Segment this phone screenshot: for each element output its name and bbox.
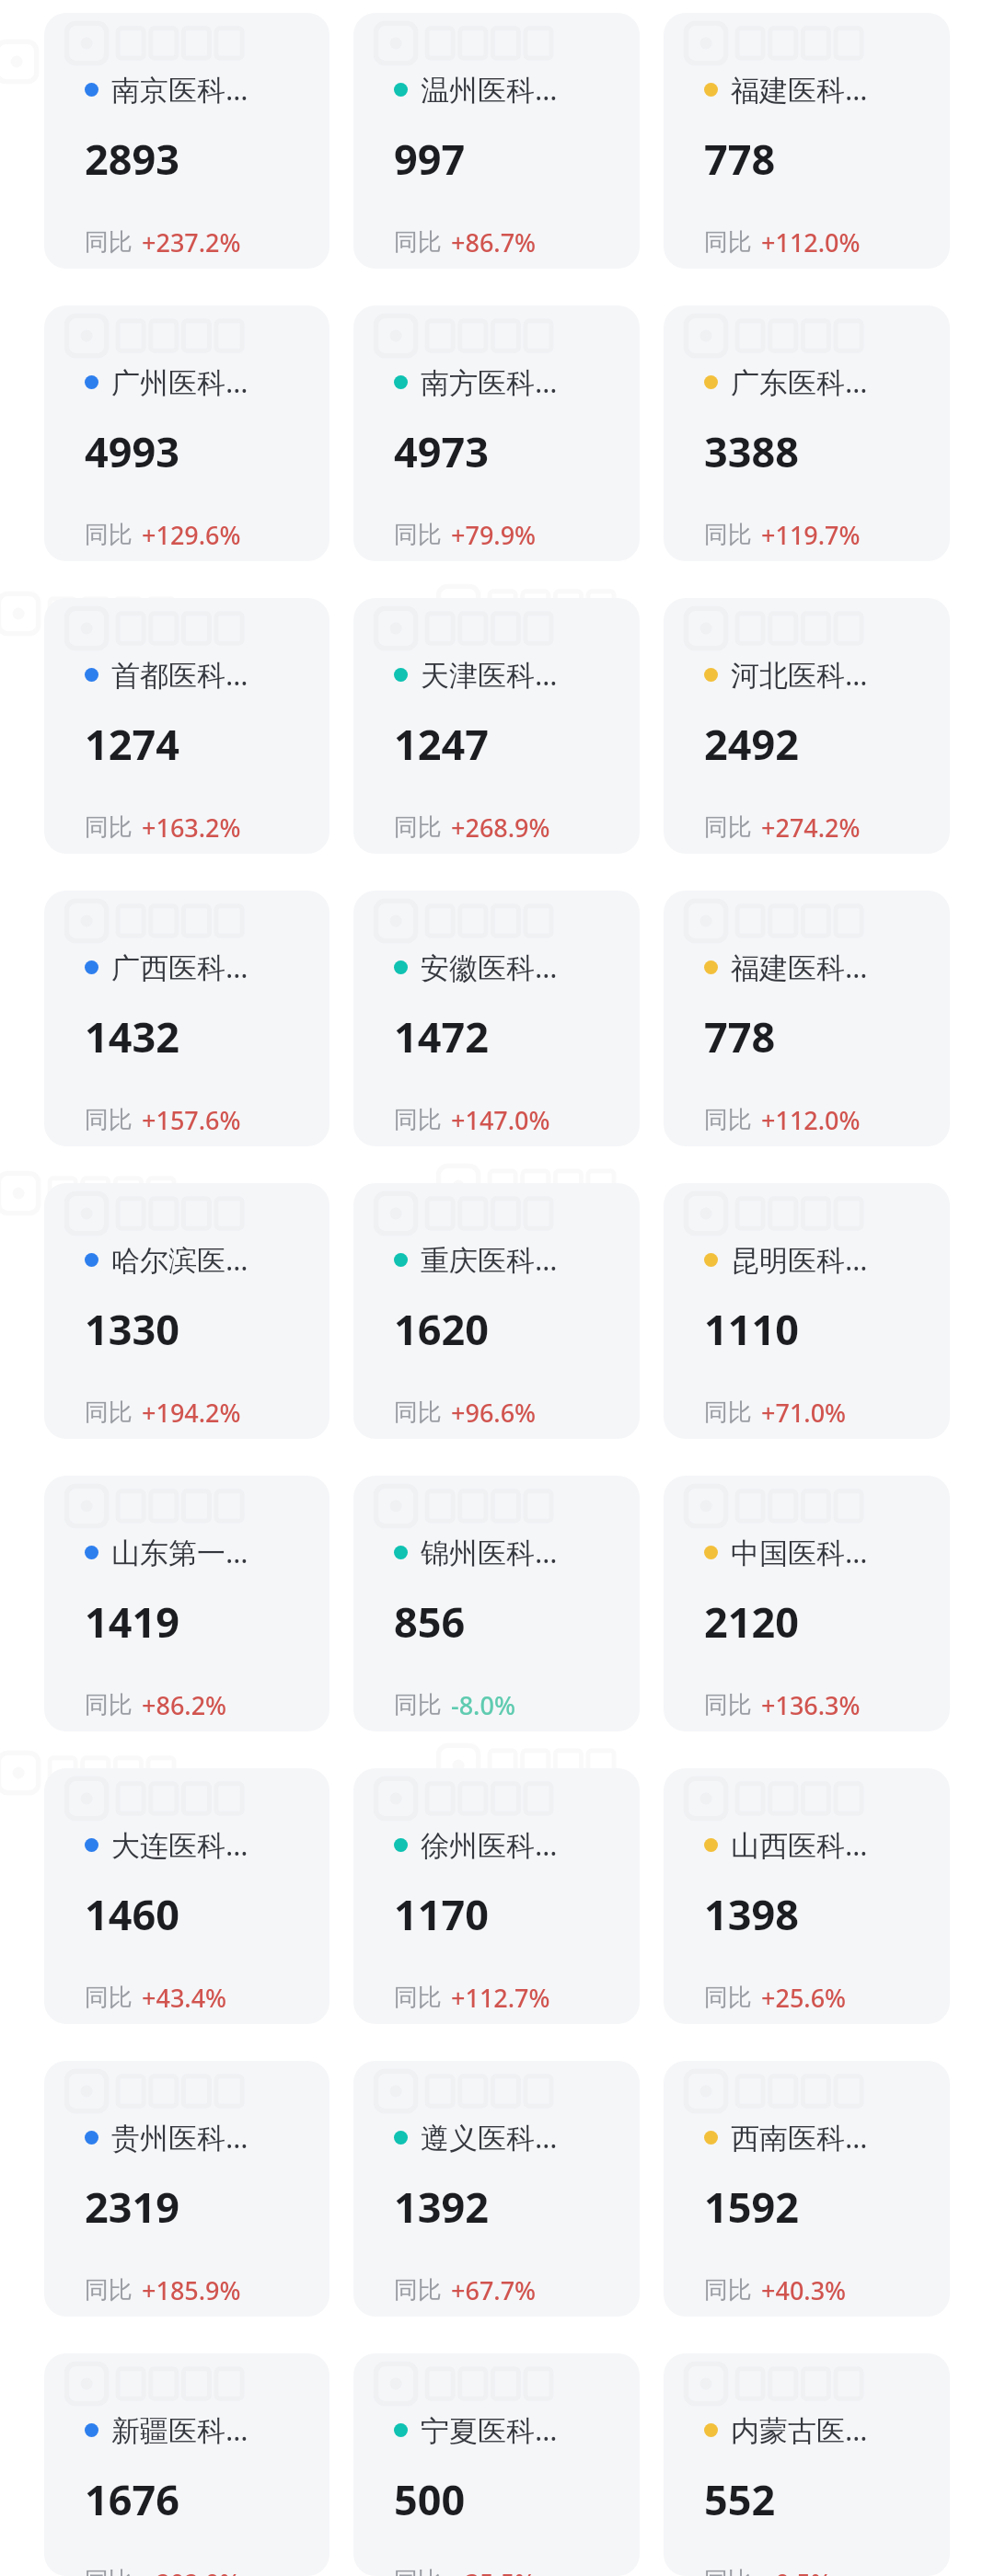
staticText: 同比: [394, 1397, 442, 1428]
staticText: +43.4%: [142, 1981, 227, 2015]
button[interactable]: 南京医科…: [44, 13, 329, 269]
staticText: 1392: [394, 2179, 489, 2235]
staticText: 500: [394, 2471, 466, 2527]
staticText: 同比: [394, 1105, 442, 1135]
staticText: 同比: [85, 2275, 133, 2306]
staticText: 1170: [394, 1886, 489, 1942]
button[interactable]: 山东第一…: [44, 1476, 329, 1731]
staticText: 遵义医科…: [421, 2118, 558, 2156]
button[interactable]: 天津医科…: [353, 598, 640, 854]
button[interactable]: 大连医科…: [44, 1768, 329, 2024]
staticText: +112.0%: [761, 225, 861, 259]
staticText: 同比: [704, 1397, 752, 1428]
staticText: +202.0%: [142, 2566, 241, 2576]
button[interactable]: 西南医科…: [664, 2061, 950, 2317]
staticText: 同比: [85, 2566, 133, 2576]
button[interactable]: 锦州医科…: [353, 1476, 640, 1731]
button[interactable]: 广东医科…: [664, 305, 950, 561]
button[interactable]: 贵州医科…: [44, 2061, 329, 2317]
button[interactable]: 宁夏医科…: [353, 2353, 640, 2576]
staticText: 1419: [85, 1593, 179, 1650]
staticText: 同比: [85, 1105, 133, 1135]
staticText: +119.7%: [761, 518, 861, 552]
button[interactable]: 安徽医科…: [353, 891, 640, 1146]
button[interactable]: 南方医科…: [353, 305, 640, 561]
staticText: +268.9%: [451, 811, 550, 845]
button[interactable]: 首都医科…: [44, 598, 329, 854]
staticText: 福建医科…: [731, 948, 868, 986]
staticText: 1247: [394, 716, 489, 772]
staticText: 2120: [704, 1593, 799, 1650]
button[interactable]: 哈尔滨医…: [44, 1183, 329, 1439]
staticText: 河北医科…: [731, 655, 868, 694]
staticText: +237.2%: [142, 225, 241, 259]
staticText: +157.6%: [142, 1103, 241, 1137]
staticText: 安徽医科…: [421, 948, 558, 986]
button[interactable]: 广西医科…: [44, 891, 329, 1146]
staticText: 同比: [394, 520, 442, 550]
button[interactable]: 新疆医科…: [44, 2353, 329, 2576]
staticText: 1460: [85, 1886, 179, 1942]
staticText: 1110: [704, 1301, 799, 1357]
staticText: 西南医科…: [731, 2118, 868, 2156]
staticText: 同比: [85, 1397, 133, 1428]
button[interactable]: 山西医科…: [664, 1768, 950, 2024]
staticText: 同比: [85, 1690, 133, 1720]
staticText: 同比: [394, 812, 442, 843]
staticText: 哈尔滨医…: [111, 1240, 248, 1279]
staticText: +67.7%: [451, 2273, 537, 2307]
button[interactable]: 中国医科…: [664, 1476, 950, 1731]
staticText: 首都医科…: [111, 655, 248, 694]
staticText: 温州医科…: [421, 70, 558, 109]
staticText: 南京医科…: [111, 70, 248, 109]
staticText: 南方医科…: [421, 362, 558, 401]
staticText: 同比: [704, 227, 752, 258]
staticText: 广西医科…: [111, 948, 248, 986]
staticText: 同比: [394, 1690, 442, 1720]
staticText: +25.6%: [761, 1981, 847, 2015]
staticText: 重庆医科…: [421, 1240, 558, 1279]
button[interactable]: 遵义医科…: [353, 2061, 640, 2317]
staticText: 徐州医科…: [421, 1825, 558, 1864]
staticText: 广东医科…: [731, 362, 868, 401]
staticText: +40.3%: [761, 2273, 847, 2307]
staticText: 552: [704, 2471, 776, 2527]
button[interactable]: 福建医科…: [664, 891, 950, 1146]
button[interactable]: 昆明医科…: [664, 1183, 950, 1439]
staticText: 山东第一…: [111, 1533, 248, 1571]
button[interactable]: 广州医科…: [44, 305, 329, 561]
staticText: 同比: [704, 1983, 752, 2013]
staticText: +129.6%: [142, 518, 241, 552]
staticText: 中国医科…: [731, 1533, 868, 1571]
staticText: 同比: [394, 2275, 442, 2306]
staticText: 同比: [704, 2275, 752, 2306]
staticText: +86.2%: [142, 1688, 227, 1722]
button[interactable]: 温州医科…: [353, 13, 640, 269]
staticText: 3388: [704, 423, 799, 479]
staticText: +71.0%: [761, 1396, 847, 1430]
staticText: 778: [704, 131, 776, 187]
staticText: 福建医科…: [731, 70, 868, 109]
staticText: 贵州医科…: [111, 2118, 248, 2156]
staticText: 昆明医科…: [731, 1240, 868, 1279]
button[interactable]: 河北医科…: [664, 598, 950, 854]
staticText: 同比: [704, 520, 752, 550]
staticText: +86.7%: [451, 225, 537, 259]
button[interactable]: 重庆医科…: [353, 1183, 640, 1439]
staticText: 2893: [85, 131, 179, 187]
staticText: +274.2%: [761, 811, 861, 845]
staticText: 1330: [85, 1301, 179, 1357]
staticText: +185.9%: [142, 2273, 241, 2307]
button[interactable]: 内蒙古医…: [664, 2353, 950, 2576]
button[interactable]: 福建医科…: [664, 13, 950, 269]
staticText: +0.5%: [761, 2566, 832, 2576]
button[interactable]: 徐州医科…: [353, 1768, 640, 2024]
staticText: 山西医科…: [731, 1825, 868, 1864]
staticText: 4973: [394, 423, 489, 479]
staticText: 同比: [85, 227, 133, 258]
staticText: 1398: [704, 1886, 799, 1942]
staticText: 同比: [394, 1983, 442, 2013]
staticText: 锦州医科…: [421, 1533, 558, 1571]
staticText: 同比: [85, 1983, 133, 2013]
staticText: +136.3%: [761, 1688, 861, 1722]
